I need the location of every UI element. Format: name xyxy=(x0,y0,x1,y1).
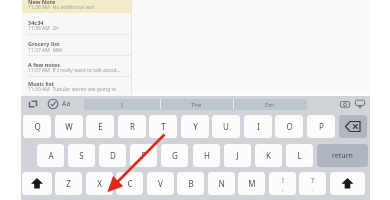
staticText: V xyxy=(158,178,163,189)
button[interactable]: D xyxy=(99,144,126,167)
button[interactable]: V xyxy=(147,172,174,195)
staticText: return xyxy=(332,151,353,161)
button[interactable]: S xyxy=(68,144,95,167)
button[interactable]: Undo xyxy=(27,98,39,110)
staticText: The xyxy=(191,101,202,109)
button[interactable]: Text format xyxy=(61,97,72,111)
staticText: R xyxy=(130,121,135,132)
button[interactable]: K xyxy=(255,144,282,167)
staticText: F xyxy=(141,150,146,161)
staticText: J xyxy=(236,150,239,161)
button[interactable]: Hide keyboard xyxy=(355,99,365,109)
button[interactable]: I'm xyxy=(233,99,306,110)
staticText: 11:37 AM Milk xyxy=(28,47,63,54)
staticText: N xyxy=(218,178,225,189)
button[interactable]: L xyxy=(286,144,313,167)
staticText: I xyxy=(121,101,124,109)
button[interactable]: Checklist xyxy=(47,98,59,110)
staticText: X xyxy=(97,178,102,189)
button[interactable]: U xyxy=(212,115,240,138)
button[interactable]: Shift right xyxy=(330,172,365,195)
button[interactable]: W xyxy=(55,115,83,138)
staticText: M xyxy=(248,178,256,189)
button[interactable]: B xyxy=(177,172,204,195)
staticText: P xyxy=(319,121,324,132)
staticText: L xyxy=(297,150,302,161)
staticText: W xyxy=(65,121,73,132)
staticText: B xyxy=(188,178,194,189)
button[interactable] xyxy=(22,13,131,34)
button[interactable]: Shift xyxy=(22,172,52,195)
button[interactable]: P xyxy=(307,115,335,138)
staticText: I xyxy=(257,121,260,132)
staticText: Q xyxy=(34,121,41,132)
button[interactable]: Camera xyxy=(340,99,350,109)
staticText: Grocery list xyxy=(28,40,60,47)
button[interactable]: Backspace xyxy=(339,115,367,138)
staticText: T xyxy=(161,121,166,132)
button[interactable]: The xyxy=(160,99,233,110)
staticText: . xyxy=(312,185,314,193)
button[interactable]: X xyxy=(86,172,113,195)
button[interactable]: R xyxy=(118,115,146,138)
staticText: ? xyxy=(311,176,315,186)
button[interactable]: T xyxy=(149,115,177,138)
button[interactable]: I xyxy=(244,115,272,138)
staticText: C xyxy=(127,178,133,189)
staticText: ! xyxy=(282,176,284,186)
staticText: Y xyxy=(193,121,198,132)
button[interactable]: Z xyxy=(55,172,82,195)
button[interactable]: Y xyxy=(181,115,209,138)
staticText: D xyxy=(110,150,116,161)
button[interactable]: E xyxy=(86,115,114,138)
staticText: 11:38 AM 2h xyxy=(28,25,59,32)
staticText: New Note xyxy=(28,0,56,5)
staticText: G xyxy=(172,150,178,161)
staticText: I'm xyxy=(265,101,274,109)
button[interactable]: G xyxy=(161,144,188,167)
button[interactable] xyxy=(22,76,131,97)
button[interactable]: ! xyxy=(269,172,296,195)
button[interactable]: Q xyxy=(23,115,51,138)
staticText: 11:37 AM If I really want to talk about… xyxy=(28,67,121,74)
staticText: 11:30 AM Tubular stereo are going to xyxy=(28,86,117,93)
staticText: , xyxy=(282,185,284,193)
button[interactable]: C xyxy=(116,172,143,195)
staticText: O xyxy=(286,121,293,132)
staticText: A xyxy=(48,150,54,161)
button[interactable] xyxy=(22,34,131,55)
button[interactable]: I xyxy=(84,99,161,110)
staticText: 11:38 AM No additional text xyxy=(28,4,95,11)
staticText: K xyxy=(266,150,271,161)
button[interactable] xyxy=(22,0,131,13)
staticText: 34c34 xyxy=(28,19,44,26)
staticText: S xyxy=(79,150,84,161)
staticText: A few notes xyxy=(28,61,61,68)
staticText: E xyxy=(98,121,103,132)
staticText: U xyxy=(223,121,229,132)
button[interactable]: ? xyxy=(299,172,326,195)
button[interactable]: F xyxy=(130,144,157,167)
button[interactable]: M xyxy=(238,172,265,195)
staticText: Z xyxy=(66,178,71,189)
button[interactable]: return xyxy=(317,144,368,167)
button[interactable]: O xyxy=(275,115,303,138)
button[interactable]: H xyxy=(193,144,220,167)
staticText: Aa xyxy=(62,99,71,109)
button[interactable]: J xyxy=(224,144,251,167)
button[interactable]: N xyxy=(208,172,235,195)
staticText: Music list xyxy=(28,80,54,87)
button[interactable]: A xyxy=(37,144,64,167)
staticText: H xyxy=(204,150,210,161)
button[interactable] xyxy=(22,55,131,76)
